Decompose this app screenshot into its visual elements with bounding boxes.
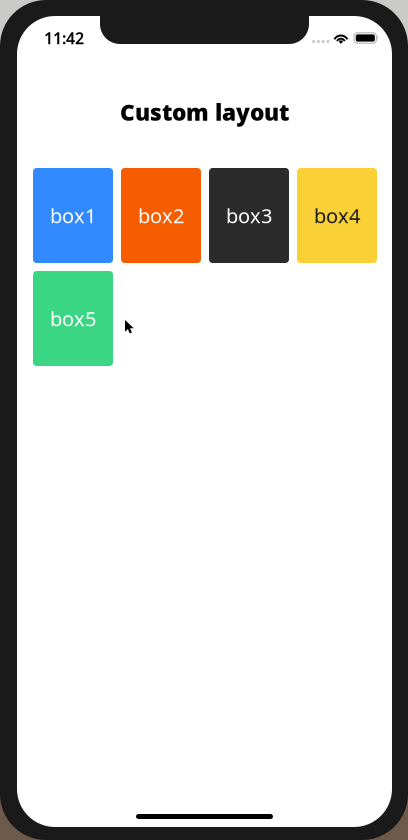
staticText: box4 xyxy=(314,202,360,229)
button[interactable]: box5 xyxy=(33,271,113,366)
staticText: box2 xyxy=(138,202,184,229)
button[interactable]: box3 xyxy=(209,168,289,263)
staticText: box5 xyxy=(50,305,96,332)
button[interactable]: box2 xyxy=(121,168,201,263)
staticText: box3 xyxy=(226,202,272,229)
button[interactable]: box4 xyxy=(297,168,377,263)
staticText: box1 xyxy=(50,202,96,229)
staticText: Custom layout xyxy=(120,97,289,127)
staticText: 11:42 xyxy=(44,27,84,49)
button[interactable]: box1 xyxy=(33,168,113,263)
